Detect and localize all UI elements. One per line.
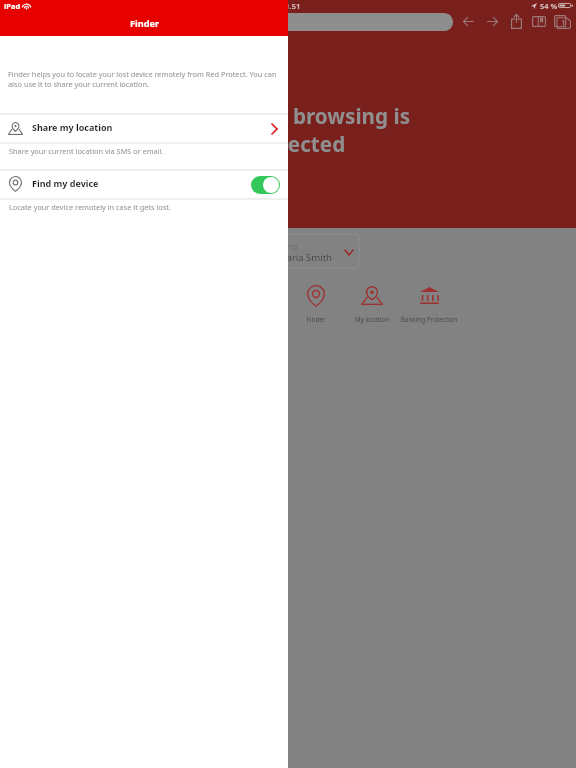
button[interactable]: Share [505, 12, 527, 32]
staticText: Share your current location via SMS or e… [9, 146, 164, 156]
staticText: Maria Smith [278, 251, 332, 264]
button[interactable]: Tabs [551, 12, 574, 32]
button[interactable]: Address bar [266, 13, 453, 31]
staticText: Finder [130, 17, 160, 30]
button[interactable]: Back [458, 13, 479, 31]
staticText: Share my location [32, 121, 113, 133]
staticText: iPad [4, 1, 21, 11]
button[interactable]: Find my device [0, 171, 288, 199]
button[interactable]: My location [335, 281, 409, 322]
button[interactable]: Share my location [0, 115, 288, 143]
staticText: Your browsing is [240, 102, 411, 130]
staticText: Locate your device remotely in case it g… [9, 202, 171, 212]
staticText: 11.51 [281, 1, 301, 11]
staticText: Find my device [32, 177, 99, 189]
staticText: Finder helps you to locate your lost dev… [8, 69, 280, 89]
button[interactable]: Banking Protection [392, 281, 466, 322]
staticText: Finder [279, 315, 353, 324]
button[interactable]: Finder [279, 281, 353, 322]
staticText: 54 % [540, 1, 558, 11]
button[interactable]: Bookmarks [529, 12, 549, 32]
staticText: Protecting [261, 241, 298, 251]
button[interactable]: Protecting [269, 234, 359, 268]
staticText: Banking Protection [392, 315, 466, 324]
staticText: protected [244, 130, 346, 158]
staticText: My location [335, 315, 409, 324]
button[interactable]: Find my device toggle [251, 176, 280, 194]
button[interactable]: Forward [482, 13, 503, 31]
